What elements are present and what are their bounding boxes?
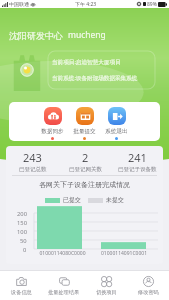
button[interactable]: Batch results	[43, 271, 85, 300]
staticText: 243	[23, 150, 42, 165]
staticText: 设备信息	[11, 289, 32, 296]
staticText: 已登记网关数	[69, 166, 102, 173]
staticText: 中国联通	[9, 1, 29, 7]
staticText: 已登记总数	[19, 166, 47, 173]
staticText: 200	[17, 210, 27, 218]
staticText: 各网关下子设备注册完成情况	[6, 180, 163, 189]
staticText: 241	[128, 150, 147, 165]
staticText: 未提交	[106, 196, 124, 204]
staticText: 已登记子设备数	[118, 166, 157, 173]
staticText: 系统退出	[103, 128, 130, 135]
button[interactable]: 2	[59, 146, 111, 176]
staticText: 50	[20, 237, 27, 245]
button[interactable]: Switch project	[85, 271, 127, 300]
staticText: 当前项目:启迪智慧大厦项目	[52, 58, 121, 66]
staticText: mucheng	[68, 29, 106, 41]
staticText: 2	[82, 150, 89, 165]
button[interactable]: Device info	[0, 271, 43, 300]
staticText: 数据同步	[39, 128, 66, 135]
staticText: 100	[17, 228, 27, 236]
staticText: 已提交	[63, 196, 81, 204]
staticText: 01000114091C0001	[93, 250, 155, 257]
staticText: 切换项目	[96, 289, 117, 296]
button[interactable]: 241	[111, 146, 163, 176]
staticText: 150	[17, 219, 27, 227]
staticText: 沈阳研发中心	[9, 30, 63, 41]
staticText: 0	[23, 246, 27, 254]
staticText: 89%	[147, 1, 157, 8]
staticText: 当前系统:设备附现场数据采集系统	[52, 74, 138, 82]
staticText: 批量提交	[71, 128, 98, 135]
button[interactable]: 数据同步	[39, 102, 66, 140]
button[interactable]: 批量提交	[71, 102, 98, 140]
button[interactable]: 系统退出	[103, 102, 130, 140]
staticText: 修改密码	[138, 289, 159, 296]
staticText: 批量处理结果	[48, 289, 80, 296]
button[interactable]: 243	[6, 146, 59, 176]
staticText: 下午 4:23	[75, 1, 97, 8]
button[interactable]: Change password	[127, 271, 169, 300]
staticText: 01000114080C0000	[32, 250, 93, 257]
